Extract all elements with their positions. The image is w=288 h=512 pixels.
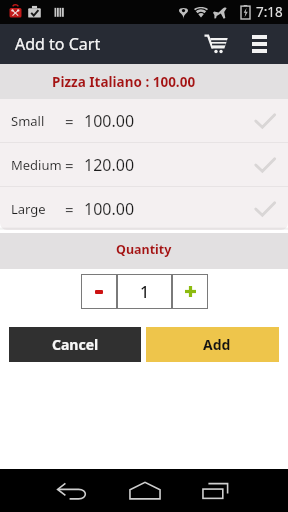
button[interactable]: Decrease quantity	[81, 274, 117, 309]
button[interactable]: Increase quantity	[172, 274, 208, 309]
button[interactable]: Large	[0, 187, 288, 230]
staticText: =	[65, 199, 74, 219]
button[interactable]: Recents	[181, 469, 254, 512]
staticText: Cancel	[52, 335, 99, 354]
staticText: =	[65, 155, 74, 175]
staticText: Add to Cart	[15, 33, 101, 55]
button[interactable]: Cart	[195, 24, 237, 64]
button[interactable]: Menu	[237, 24, 281, 64]
button[interactable]: Back	[35, 469, 108, 512]
staticText: 100.00	[84, 198, 135, 220]
staticText: 7:18	[256, 3, 283, 21]
staticText: Quantity	[116, 241, 172, 258]
button[interactable]: Small	[0, 99, 288, 142]
button[interactable]: Quantity	[117, 274, 172, 309]
button[interactable]: Add	[146, 327, 279, 362]
staticText: Pizza Italiano : 100.00	[52, 73, 196, 91]
button[interactable]: Cancel	[9, 327, 141, 362]
button[interactable]: Medium	[0, 143, 288, 186]
staticText: 100.00	[84, 110, 135, 132]
staticText: Medium	[11, 156, 62, 174]
staticText: 120.00	[84, 154, 135, 176]
staticText: 1	[140, 281, 150, 303]
staticText: Large	[11, 200, 46, 218]
staticText: Small	[11, 112, 45, 130]
staticText: =	[65, 111, 74, 131]
button[interactable]: Home	[108, 469, 181, 512]
staticText: Add	[203, 335, 231, 354]
